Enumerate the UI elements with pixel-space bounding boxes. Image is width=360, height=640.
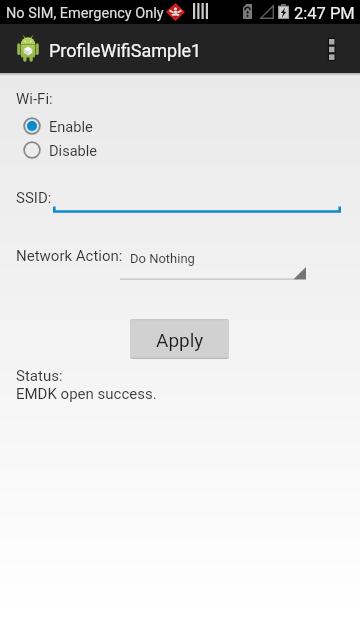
staticText: Wi-Fi: bbox=[16, 90, 53, 108]
staticText: Network Action: bbox=[16, 247, 123, 265]
button[interactable]: More options bbox=[316, 24, 360, 73]
staticText: 2:47 PM bbox=[294, 4, 355, 23]
staticText: EMDK open success. bbox=[16, 385, 157, 403]
button[interactable]: Disable bbox=[22, 138, 98, 162]
button[interactable]: Enable bbox=[22, 114, 93, 138]
staticText: No SIM, Emergency Only bbox=[6, 5, 164, 22]
staticText: SSID: bbox=[16, 189, 52, 207]
staticText: Apply bbox=[156, 329, 204, 351]
button[interactable]: Network action spinner bbox=[120, 244, 306, 280]
button[interactable]: SSID input field bbox=[53, 196, 341, 214]
staticText: Disable bbox=[49, 142, 98, 159]
button[interactable]: Apply bbox=[130, 319, 229, 359]
staticText: Status: bbox=[16, 367, 63, 385]
staticText: Enable bbox=[49, 118, 93, 135]
staticText: Do Nothing bbox=[130, 251, 195, 266]
staticText: ProfileWifiSample1 bbox=[49, 40, 202, 61]
